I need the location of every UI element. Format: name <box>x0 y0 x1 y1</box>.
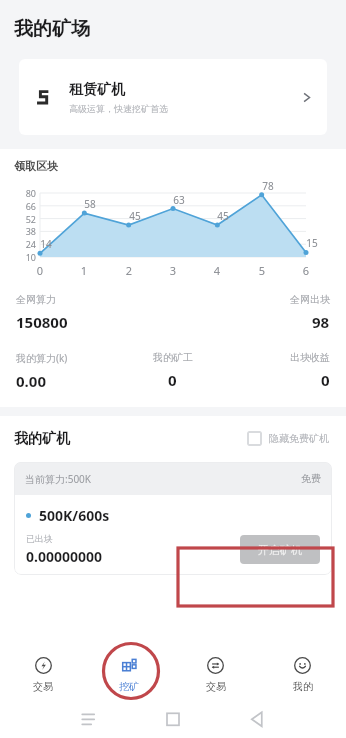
staticText: 10 <box>12 251 36 263</box>
staticText: 45 <box>122 209 148 223</box>
staticText: 我的算力(k) <box>16 351 68 365</box>
staticText: 我的矿工 <box>153 351 193 364</box>
button[interactable]: 交易 <box>172 646 259 704</box>
staticText: 6 <box>296 263 316 278</box>
button[interactable]: 挖矿 <box>86 646 172 704</box>
staticText: 45 <box>210 209 236 223</box>
staticText: 66 <box>12 200 36 212</box>
staticText: 3 <box>163 263 183 278</box>
staticText: 免费 <box>301 472 321 485</box>
staticText: 挖矿 <box>119 680 139 693</box>
staticText: 58 <box>77 197 103 211</box>
staticText: 交易 <box>33 680 53 693</box>
staticText: 0.00 <box>16 371 46 391</box>
staticText: 0 <box>30 263 50 278</box>
staticText: 14 <box>33 237 59 251</box>
staticText: 我的矿机 <box>14 430 70 448</box>
staticText: 4 <box>207 263 227 278</box>
staticText: 0 <box>168 370 177 390</box>
staticText: 24 <box>12 238 36 250</box>
staticText: 我的 <box>293 680 313 693</box>
staticText: 领取区块 <box>14 159 58 173</box>
staticText: 1 <box>74 263 94 278</box>
staticText: 63 <box>166 193 192 207</box>
staticText: 已出块 <box>26 533 53 544</box>
button[interactable]: 租赁矿机 <box>19 59 327 135</box>
staticText: 52 <box>12 213 36 225</box>
staticText: 98 <box>312 312 330 332</box>
staticText: 80 <box>12 187 36 199</box>
staticText: 隐藏免费矿机 <box>269 432 329 445</box>
staticText: 0 <box>321 370 330 390</box>
button[interactable]: 我的 <box>259 646 346 704</box>
staticText: 出块收益 <box>290 351 330 364</box>
staticText: 高级运算，快速挖矿首选 <box>69 103 168 114</box>
staticText: 150800 <box>16 312 68 332</box>
other: Open <box>299 90 314 105</box>
button[interactable]: 交易 <box>0 646 86 704</box>
staticText: 我的矿场 <box>14 17 90 41</box>
staticText: 5 <box>252 263 272 278</box>
staticText: 78 <box>255 179 281 193</box>
staticText: 2 <box>119 263 139 278</box>
staticText: 500K/600s <box>39 506 110 525</box>
staticText: 当前算力:500K <box>25 472 92 486</box>
staticText: 租赁矿机 <box>69 81 125 99</box>
staticText: 交易 <box>206 680 226 693</box>
staticText: 全网算力 <box>16 293 56 306</box>
button[interactable]: 隐藏免费矿机 <box>244 428 332 449</box>
staticText: 15 <box>299 236 325 250</box>
button[interactable]: 开启矿机 <box>240 535 320 564</box>
staticText: 38 <box>12 225 36 237</box>
staticText: 全网出块 <box>290 293 330 306</box>
staticText: 开启矿机 <box>258 543 302 557</box>
staticText: 0.00000000 <box>26 547 103 566</box>
